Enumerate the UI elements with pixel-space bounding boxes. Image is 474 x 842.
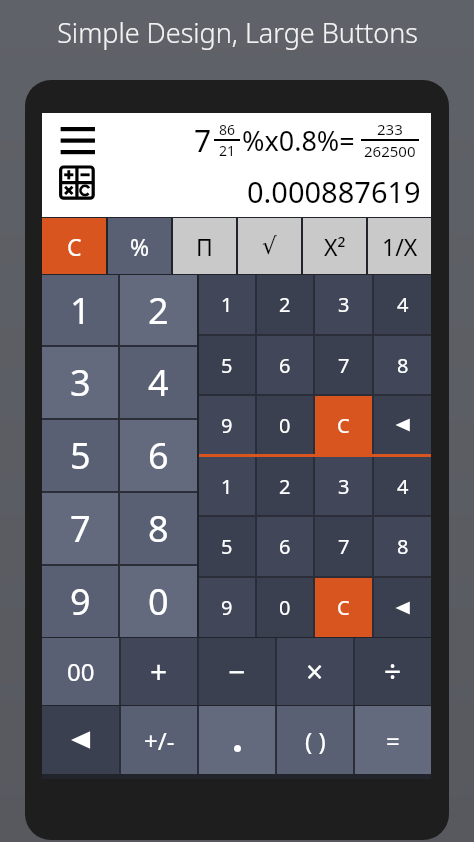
- button[interactable]: ÷: [355, 638, 431, 705]
- button[interactable]: 5: [199, 336, 255, 394]
- button[interactable]: =: [355, 706, 431, 774]
- button[interactable]: 00: [42, 638, 119, 705]
- button[interactable]: 5: [199, 517, 255, 576]
- button[interactable]: 7: [42, 493, 118, 564]
- button[interactable]: %: [108, 218, 171, 274]
- button[interactable]: [199, 706, 275, 774]
- staticText: 6: [279, 352, 291, 379]
- button[interactable]: 7: [315, 336, 372, 394]
- staticText: Π: [196, 231, 213, 262]
- staticText: 9: [70, 577, 91, 626]
- button[interactable]: +: [121, 638, 197, 705]
- button[interactable]: −: [199, 638, 275, 705]
- button[interactable]: Menu: [58, 123, 102, 201]
- button[interactable]: 6: [120, 420, 197, 491]
- button[interactable]: Backspace: [42, 706, 119, 774]
- staticText: 2: [148, 286, 169, 335]
- button[interactable]: Backspace: [374, 396, 431, 454]
- button[interactable]: 0: [120, 566, 197, 637]
- staticText: 00: [67, 655, 95, 688]
- button[interactable]: 9: [199, 396, 255, 454]
- staticText: 1: [221, 473, 233, 500]
- staticText: 6: [279, 533, 291, 560]
- button[interactable]: 1/X: [368, 218, 431, 274]
- staticText: 9: [221, 594, 233, 621]
- button[interactable]: C: [315, 578, 372, 637]
- staticText: 2: [279, 473, 291, 500]
- staticText: 4: [397, 291, 409, 318]
- staticText: 0: [279, 412, 291, 439]
- button[interactable]: 1: [199, 275, 255, 334]
- staticText: 233: [377, 119, 403, 139]
- staticText: √: [262, 233, 277, 260]
- button[interactable]: +/-: [121, 706, 197, 774]
- staticText: 7: [338, 352, 350, 379]
- staticText: 21: [219, 141, 236, 160]
- button[interactable]: 2: [257, 275, 313, 334]
- button[interactable]: 3: [315, 275, 372, 334]
- button[interactable]: 8: [374, 336, 431, 394]
- staticText: 7: [70, 504, 91, 553]
- button[interactable]: 5: [42, 420, 118, 491]
- staticText: 5: [221, 352, 233, 379]
- button[interactable]: ( ): [277, 706, 353, 774]
- button[interactable]: 3: [42, 347, 118, 418]
- staticText: 5: [221, 533, 233, 560]
- button[interactable]: 4: [374, 457, 431, 515]
- staticText: 3: [338, 473, 350, 500]
- button[interactable]: 2: [257, 457, 313, 515]
- staticText: C: [337, 412, 350, 439]
- staticText: 3: [338, 291, 350, 318]
- staticText: 4: [148, 358, 169, 407]
- staticText: 1: [70, 286, 91, 335]
- staticText: −: [228, 651, 246, 692]
- staticText: 0.000887619: [247, 172, 421, 211]
- button[interactable]: 9: [42, 566, 118, 637]
- button[interactable]: X²: [303, 218, 366, 274]
- staticText: 0: [279, 594, 291, 621]
- staticText: 1: [221, 291, 233, 318]
- staticText: =: [386, 724, 400, 757]
- staticText: 5: [70, 431, 91, 480]
- button[interactable]: C: [42, 218, 106, 274]
- button[interactable]: ×: [277, 638, 353, 705]
- staticText: X²: [324, 231, 346, 262]
- button[interactable]: 8: [374, 517, 431, 576]
- staticText: 0: [148, 577, 169, 626]
- staticText: 7: [194, 120, 212, 161]
- button[interactable]: C: [315, 396, 372, 454]
- staticText: ( ): [305, 724, 326, 757]
- staticText: ×: [306, 651, 324, 692]
- button[interactable]: √: [238, 218, 301, 274]
- button[interactable]: 3: [315, 457, 372, 515]
- button[interactable]: 4: [374, 275, 431, 334]
- staticText: 86: [219, 120, 236, 139]
- staticText: +/-: [144, 724, 175, 757]
- staticText: 4: [397, 473, 409, 500]
- staticText: 1/X: [382, 231, 418, 262]
- button[interactable]: 6: [257, 336, 313, 394]
- button[interactable]: 6: [257, 517, 313, 576]
- button[interactable]: 4: [120, 347, 197, 418]
- button[interactable]: 0: [257, 396, 313, 454]
- button[interactable]: Π: [173, 218, 236, 274]
- staticText: Simple Design, Large Buttons: [57, 14, 418, 51]
- button[interactable]: 8: [120, 493, 197, 564]
- staticText: 262500: [364, 141, 416, 161]
- staticText: 8: [148, 504, 169, 553]
- button[interactable]: 2: [120, 275, 197, 345]
- staticText: 6: [148, 431, 169, 480]
- button[interactable]: 1: [42, 275, 118, 345]
- button[interactable]: 9: [199, 578, 255, 637]
- staticText: %: [130, 231, 150, 262]
- staticText: +: [150, 651, 168, 692]
- staticText: 2: [279, 291, 291, 318]
- button[interactable]: Backspace: [374, 578, 431, 637]
- staticText: 8: [397, 352, 409, 379]
- staticText: 9: [221, 412, 233, 439]
- staticText: C: [67, 231, 82, 262]
- button[interactable]: 7: [315, 517, 372, 576]
- button[interactable]: 1: [199, 457, 255, 515]
- button[interactable]: 0: [257, 578, 313, 637]
- staticText: C: [337, 594, 350, 621]
